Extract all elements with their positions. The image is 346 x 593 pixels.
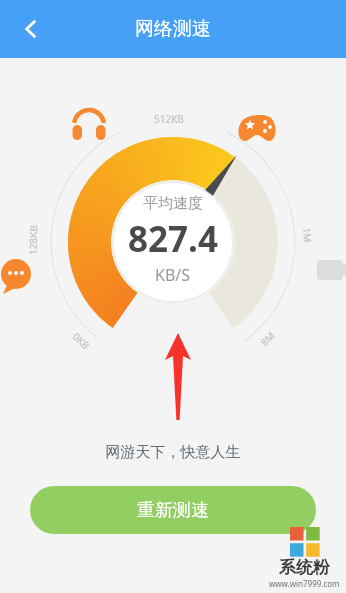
staticText: 512KB	[154, 112, 184, 126]
staticText: 128KB	[26, 225, 40, 255]
button[interactable]: Back	[8, 6, 54, 52]
staticText: 平均速度	[143, 194, 203, 213]
staticText: 网游天下，快意人生	[0, 443, 346, 462]
staticText: 827.4	[128, 215, 218, 263]
staticText: www.win7999.com	[269, 578, 340, 589]
staticText: 1M	[300, 227, 315, 243]
staticText: 8M	[257, 329, 278, 349]
staticText: 重新测速	[137, 499, 209, 522]
staticText: 0KB	[70, 329, 93, 353]
staticText: 网络测速	[135, 17, 211, 41]
staticText: 系统粉	[279, 557, 330, 578]
button[interactable]: 重新测速	[30, 486, 316, 534]
staticText: KB/S	[155, 264, 191, 286]
